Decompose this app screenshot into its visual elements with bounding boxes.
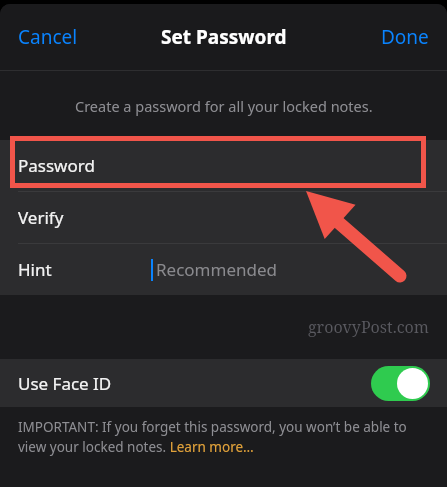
button[interactable]: Use Face ID xyxy=(0,359,447,407)
staticText: Set Password xyxy=(161,24,287,50)
staticText: Recommended xyxy=(156,258,277,281)
staticText: Hint xyxy=(18,258,52,281)
button[interactable]: Cancel xyxy=(8,18,88,56)
staticText: IMPORTANT: If you forget this password, … xyxy=(18,418,431,456)
button[interactable]: Password xyxy=(0,140,447,191)
button[interactable]: Hint xyxy=(0,244,447,295)
button[interactable]: Use Face ID toggle, on xyxy=(371,366,430,401)
staticText: Done xyxy=(381,24,429,50)
staticText: Verify xyxy=(18,206,64,229)
button[interactable]: Done xyxy=(371,18,439,56)
staticText: Use Face ID xyxy=(18,372,112,395)
staticText: Password xyxy=(18,154,95,177)
button[interactable]: Verify xyxy=(0,192,447,243)
staticText: groovyPost.com xyxy=(308,316,429,338)
other: Annotation arrow xyxy=(0,4,447,487)
staticText: Create a password for all your locked no… xyxy=(75,96,373,116)
staticText: Cancel xyxy=(18,24,78,50)
